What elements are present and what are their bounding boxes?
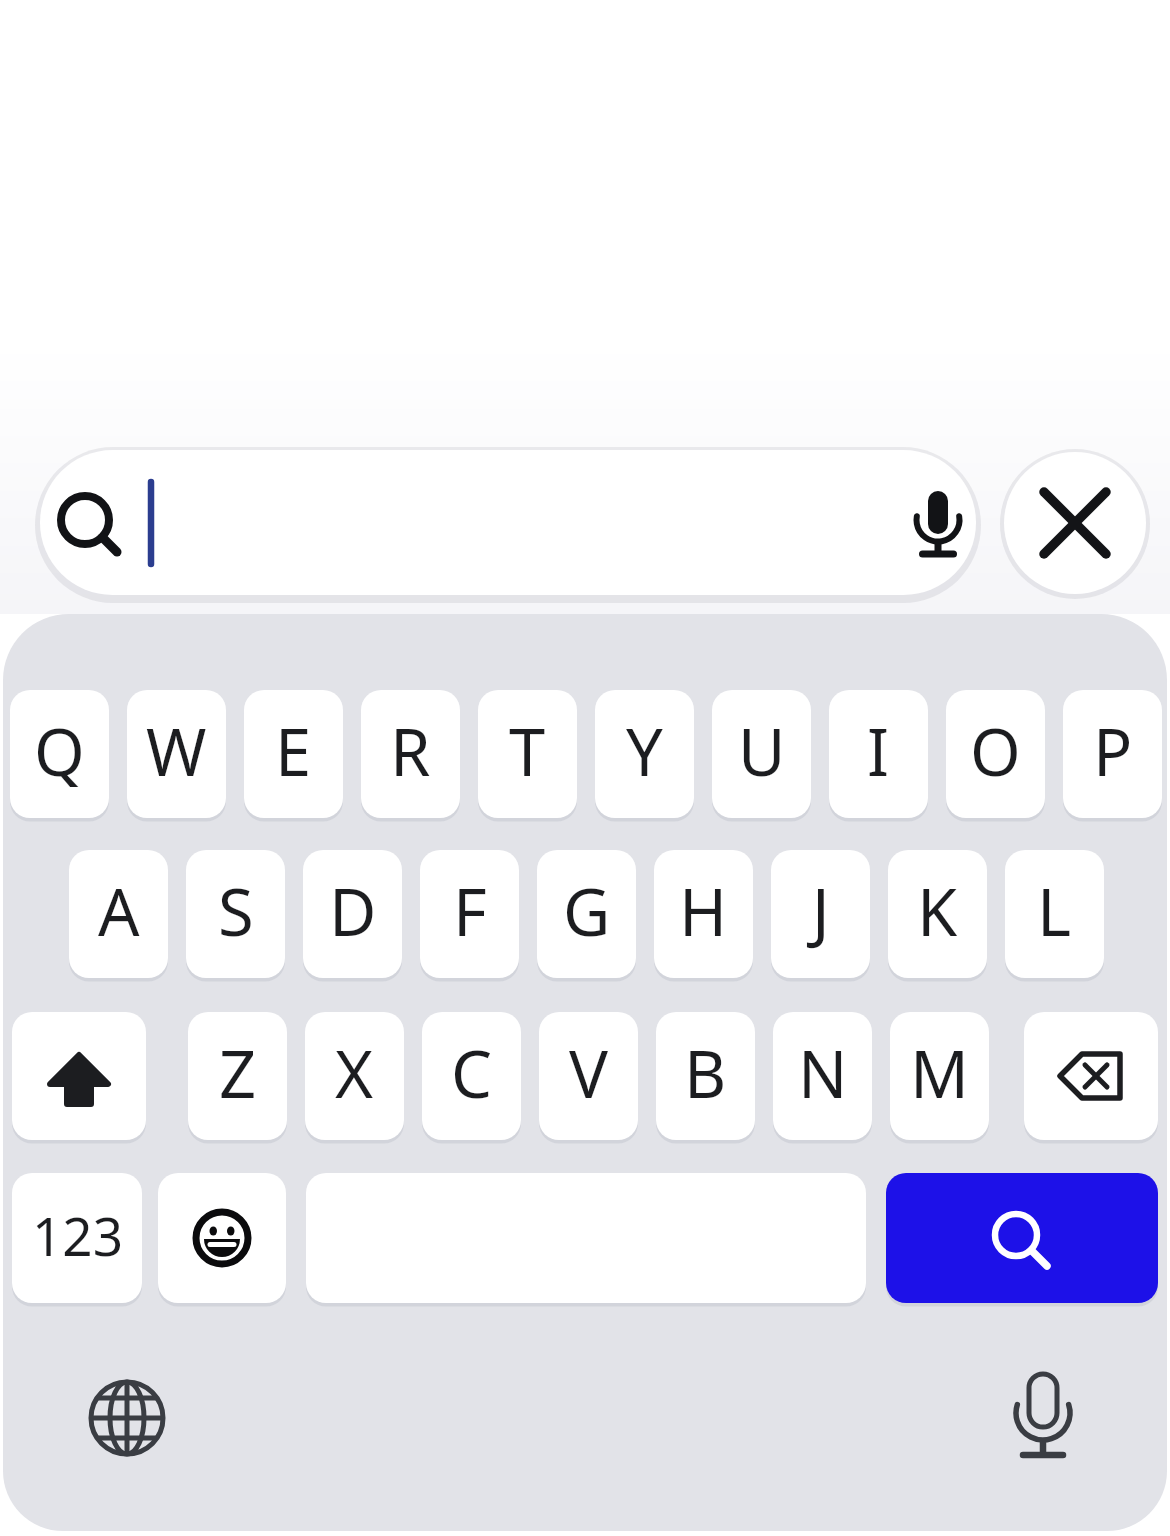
button[interactable]: R — [361, 690, 460, 818]
staticText: J — [812, 867, 830, 956]
button[interactable]: V — [539, 1012, 638, 1140]
staticText: K — [917, 867, 958, 956]
button[interactable]: M — [890, 1012, 989, 1140]
staticText: P — [1093, 707, 1133, 796]
button[interactable]: I — [829, 690, 928, 818]
staticText: 123 — [32, 1199, 123, 1271]
button[interactable]: Q — [10, 690, 109, 818]
staticText: M — [910, 1029, 969, 1118]
staticText: Q — [34, 707, 85, 796]
button[interactable] — [1024, 1012, 1158, 1140]
staticText: B — [684, 1029, 727, 1118]
button[interactable] — [89, 1380, 165, 1456]
button[interactable] — [158, 1173, 286, 1303]
button[interactable]: T — [478, 690, 577, 818]
button[interactable] — [1004, 452, 1146, 594]
button[interactable]: A — [69, 850, 168, 978]
staticText: W — [146, 707, 207, 796]
button[interactable]: G — [537, 850, 636, 978]
staticText: N — [798, 1029, 848, 1118]
button[interactable]: C — [422, 1012, 521, 1140]
button[interactable] — [1003, 1370, 1083, 1462]
staticText: F — [453, 867, 487, 956]
staticText: E — [275, 707, 312, 796]
button[interactable]: O — [946, 690, 1045, 818]
button[interactable]: X — [305, 1012, 404, 1140]
staticText: X — [335, 1029, 374, 1118]
button[interactable]: Z — [188, 1012, 287, 1140]
button[interactable]: P — [1063, 690, 1162, 818]
staticText: H — [679, 867, 728, 956]
button[interactable]: D — [303, 850, 402, 978]
staticText: D — [329, 867, 377, 956]
button[interactable] — [886, 1173, 1158, 1303]
button[interactable]: E — [244, 690, 343, 818]
button[interactable]: S — [186, 850, 285, 978]
button[interactable]: L — [1005, 850, 1104, 978]
staticText: T — [509, 707, 546, 796]
staticText: A — [98, 867, 140, 956]
button[interactable]: W — [127, 690, 226, 818]
staticText: U — [738, 707, 786, 796]
staticText: I — [867, 707, 890, 796]
staticText: Z — [219, 1029, 257, 1118]
staticText: S — [218, 867, 254, 956]
staticText: G — [563, 867, 611, 956]
staticText: O — [970, 707, 1021, 796]
button[interactable]: F — [420, 850, 519, 978]
staticText: C — [451, 1029, 493, 1118]
staticText: L — [1037, 867, 1072, 956]
button[interactable] — [12, 1012, 146, 1140]
staticText: V — [569, 1029, 609, 1118]
button[interactable]: H — [654, 850, 753, 978]
button[interactable]: B — [656, 1012, 755, 1140]
button[interactable]: U — [712, 690, 811, 818]
button[interactable]: Y — [595, 690, 694, 818]
button[interactable]: 123 — [12, 1173, 142, 1303]
button[interactable]: N — [773, 1012, 872, 1140]
button[interactable]: J — [771, 850, 870, 978]
button[interactable]: K — [888, 850, 987, 978]
button[interactable] — [40, 450, 976, 595]
staticText: R — [390, 707, 431, 796]
staticText: Y — [626, 707, 663, 796]
